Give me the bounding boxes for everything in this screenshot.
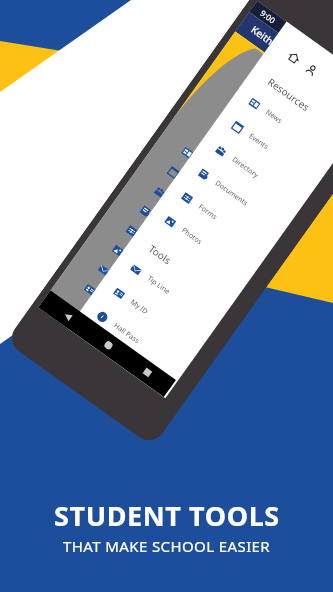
- staticText: Keith Middle School: [248, 22, 332, 88]
- staticText: News: [194, 155, 215, 174]
- staticText: Tip Line: [145, 274, 172, 297]
- staticText: Photos: [124, 253, 149, 274]
- button[interactable]: Documents: [192, 160, 281, 234]
- button[interactable]: Forms: [175, 184, 264, 257]
- staticText: Documents: [152, 214, 189, 244]
- button[interactable]: Directory: [209, 137, 297, 210]
- staticText: News: [264, 108, 284, 126]
- staticText: THAT MAKE SCHOOL EASIER: [63, 536, 271, 556]
- button[interactable]: Home: [286, 49, 302, 66]
- button[interactable]: My ID: [107, 279, 196, 352]
- button[interactable]: Tip Line: [124, 255, 213, 329]
- staticText: 9:00: [258, 7, 278, 25]
- staticText: STUDENT TOOLS: [54, 497, 280, 534]
- button[interactable]: News: [243, 89, 331, 163]
- staticText: Forms: [196, 202, 219, 222]
- staticText: Directory: [166, 194, 197, 220]
- button[interactable]: Home: [103, 340, 114, 351]
- staticText: Photos: [179, 226, 204, 247]
- staticText: Tip Line: [110, 272, 137, 295]
- staticText: Resources: [265, 75, 313, 115]
- button[interactable]: Account: [304, 62, 320, 79]
- staticText: Forms: [138, 233, 161, 253]
- staticText: Hall Pass: [111, 321, 142, 346]
- button[interactable]: Events: [226, 113, 314, 186]
- staticText: My ID: [128, 297, 150, 317]
- staticText: Directory: [230, 155, 261, 181]
- button[interactable]: Back: [61, 309, 75, 323]
- button[interactable]: Hall Pass: [91, 303, 179, 376]
- staticText: Events: [180, 175, 204, 195]
- staticText: My ID: [97, 292, 119, 312]
- staticText: Documents: [213, 178, 250, 209]
- staticText: Events: [247, 131, 270, 152]
- button[interactable]: Photos: [158, 207, 247, 281]
- staticText: Tools: [146, 242, 175, 267]
- button[interactable]: Recents: [143, 368, 152, 377]
